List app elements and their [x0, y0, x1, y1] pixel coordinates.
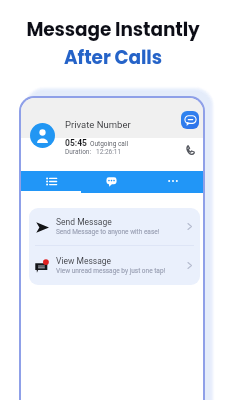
- staticText: After Calls: [64, 45, 162, 71]
- button[interactable]: Call: [184, 144, 196, 156]
- staticText: 12:26:11: [96, 148, 122, 156]
- staticText: Message Instantly: [26, 17, 200, 43]
- staticText: Outgoing call: [90, 140, 129, 148]
- staticText: Send Message to anyone with ease!: [56, 228, 160, 236]
- staticText: 05:45: [65, 138, 87, 148]
- staticText: View unread message by just one tap!: [56, 267, 166, 275]
- button[interactable]: Send Message: [29, 208, 200, 245]
- button[interactable]: Messages: [81, 171, 142, 193]
- staticText: Send Message: [56, 217, 112, 227]
- staticText: View Message: [56, 256, 112, 266]
- button[interactable]: More: [142, 171, 203, 193]
- button[interactable]: Messages: [181, 111, 199, 129]
- staticText: Private Number: [65, 119, 131, 130]
- button[interactable]: Call log: [21, 171, 81, 193]
- button[interactable]: View Message: [29, 246, 200, 285]
- staticText: Duration:: [65, 148, 92, 156]
